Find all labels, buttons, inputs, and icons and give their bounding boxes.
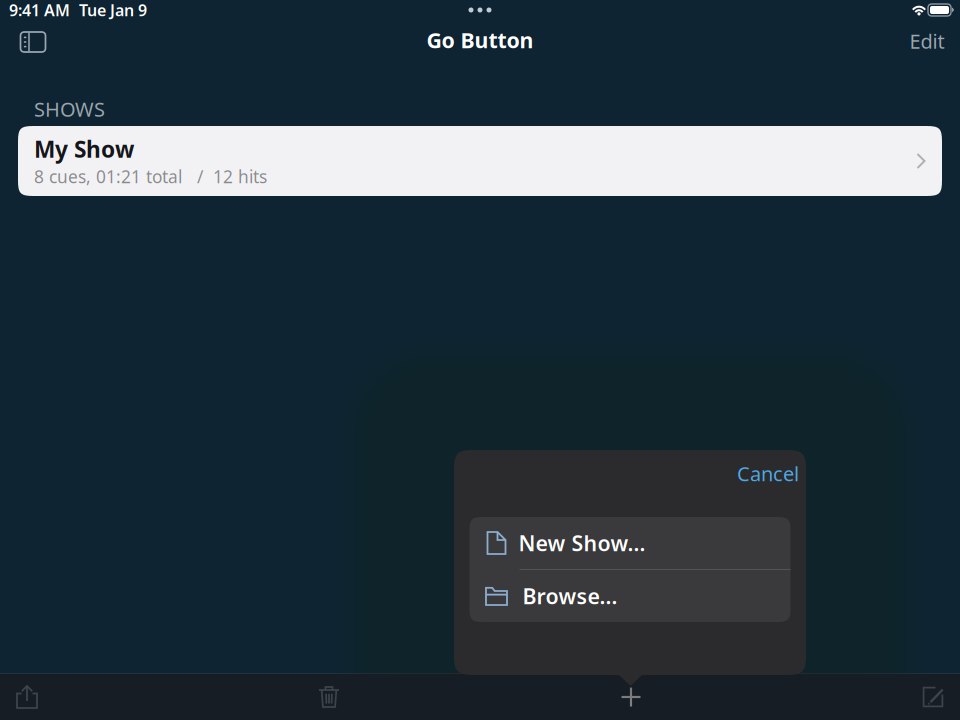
button[interactable]: Share xyxy=(1,674,53,720)
button[interactable]: Delete xyxy=(303,674,355,720)
staticText: Edit xyxy=(909,28,944,54)
staticText: Cancel xyxy=(737,460,799,487)
staticText: New Show... xyxy=(518,529,645,557)
button[interactable]: Browse... xyxy=(469,570,790,622)
staticText: Go Button xyxy=(426,26,533,54)
staticText: Tue Jan 9 xyxy=(79,0,147,21)
staticText: 9:41 AM xyxy=(9,0,70,21)
staticText: My Show xyxy=(34,134,134,164)
button[interactable]: Edit xyxy=(903,20,951,60)
button[interactable]: Cancel xyxy=(730,450,806,497)
staticText: SHOWS xyxy=(34,96,105,122)
button[interactable]: New Show... xyxy=(469,517,790,569)
staticText: 8 cues, 01:21 total / 12 hits xyxy=(34,165,267,188)
button[interactable]: Add xyxy=(605,674,657,720)
staticText: Browse... xyxy=(522,582,617,610)
button[interactable]: Compose xyxy=(907,674,959,720)
button[interactable]: My Show xyxy=(18,126,942,196)
button[interactable]: Toggle Sidebar xyxy=(9,20,57,60)
